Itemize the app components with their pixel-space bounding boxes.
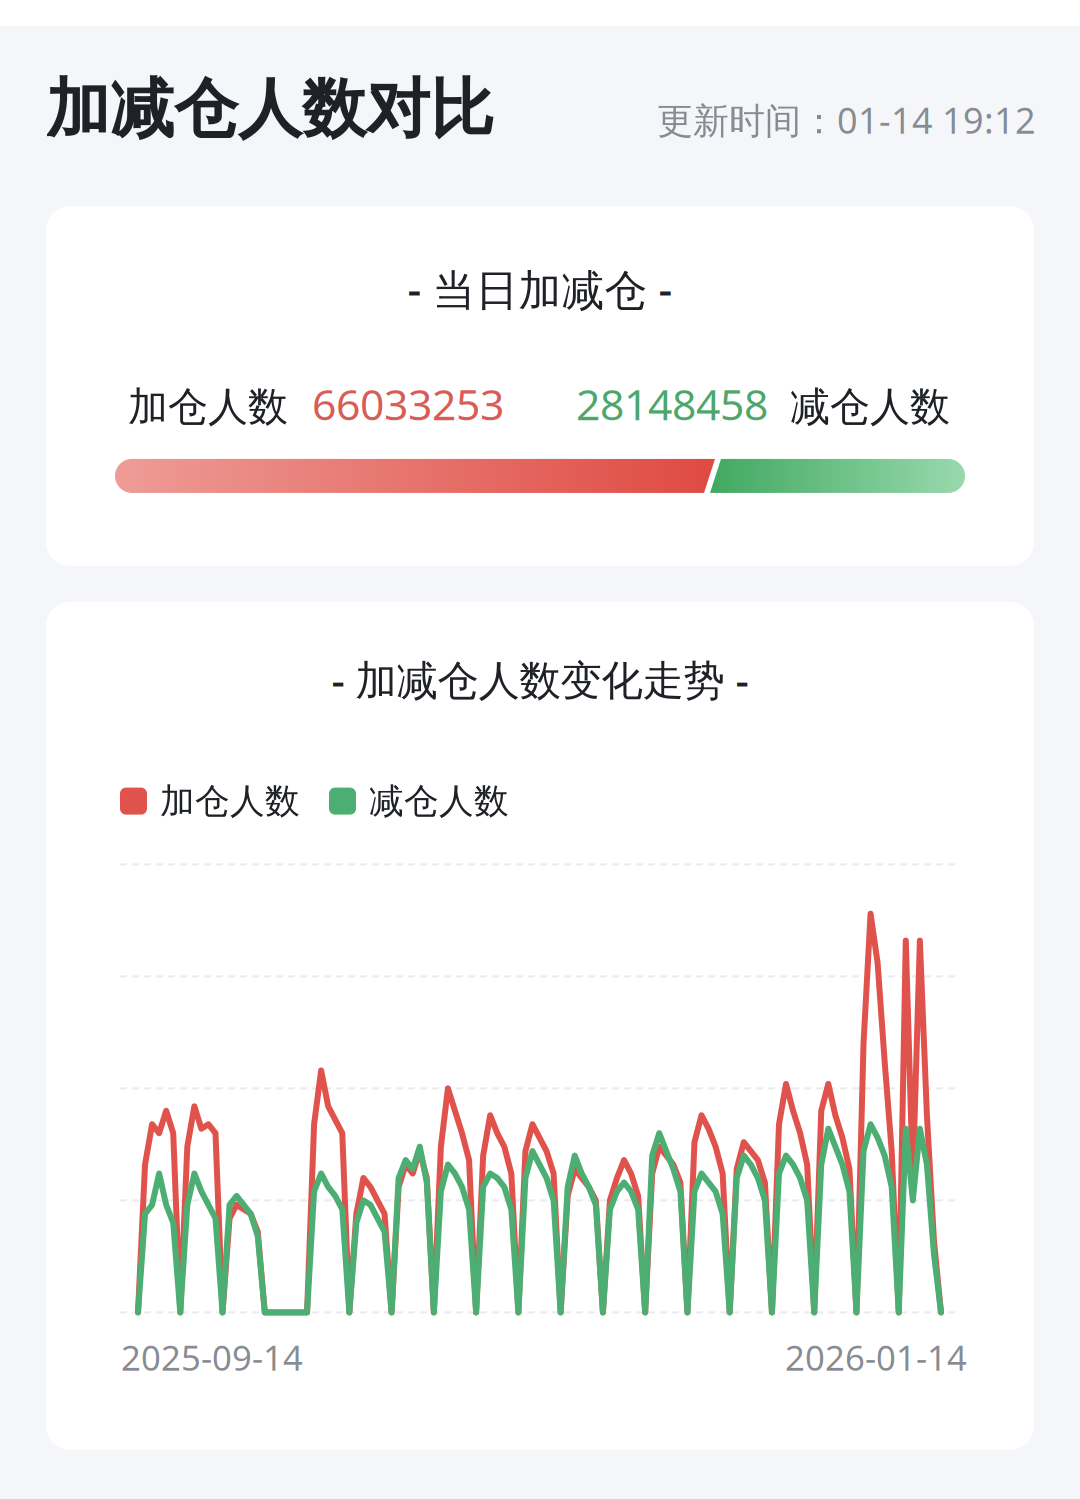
button[interactable]: 加仓人数 <box>120 780 300 822</box>
staticText: 加减仓人数对比 <box>46 70 494 149</box>
button[interactable]: 减仓人数 <box>329 780 509 822</box>
staticText: 28148458 <box>576 375 768 432</box>
button[interactable]: - 当日加减仓 - <box>0 207 1080 566</box>
button[interactable]: - 加减仓人数变化走势 - <box>0 602 1080 1449</box>
staticText: 加仓人数 <box>128 382 288 431</box>
staticText: 更新时间：01-14 19:12 <box>657 96 1036 144</box>
staticText: 2025-09-14 <box>121 1334 303 1380</box>
staticText: 减仓人数 <box>369 780 509 822</box>
staticText: 加仓人数 <box>160 780 300 822</box>
staticText: - 加减仓人数变化走势 - <box>331 652 748 707</box>
staticText: 减仓人数 <box>790 382 950 431</box>
staticText: 66033253 <box>312 375 504 432</box>
staticText: - 当日加减仓 - <box>407 261 672 317</box>
staticText: 2026-01-14 <box>785 1334 967 1380</box>
